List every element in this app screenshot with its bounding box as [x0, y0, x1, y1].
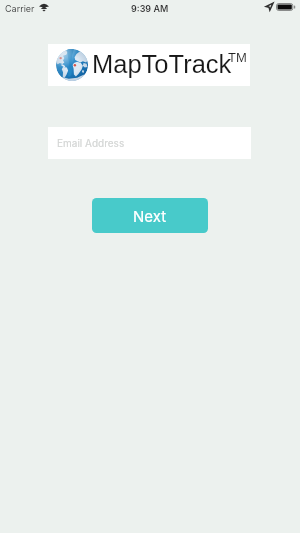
other: Battery — [276, 3, 295, 11]
other: Location — [266, 3, 273, 10]
other: Wi-Fi — [39, 4, 49, 11]
button[interactable]: Email Address — [48, 127, 251, 159]
staticText: TM — [228, 50, 247, 65]
staticText: MapToTrack — [92, 50, 232, 78]
staticText: Next — [133, 207, 167, 225]
staticText: Carrier — [5, 3, 35, 14]
button[interactable]: Next — [92, 198, 208, 233]
staticText: Email Address — [57, 137, 125, 149]
staticText: 9:39 AM — [131, 3, 169, 14]
